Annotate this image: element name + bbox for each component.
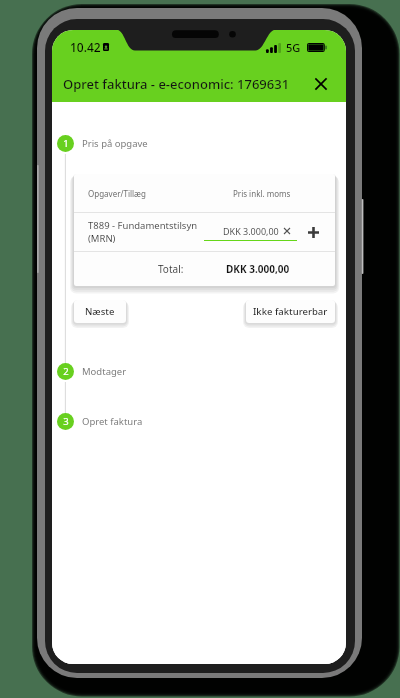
staticText: Pris inkl. moms: [233, 188, 291, 199]
button[interactable]: 3: [52, 413, 346, 430]
button[interactable]: Ikke fakturerbar: [246, 300, 335, 323]
staticText: T889 - Fundamentstilsyn (MRN): [88, 219, 198, 245]
staticText: Total:: [158, 262, 184, 276]
button[interactable]: 1: [52, 135, 346, 152]
button[interactable]: Luk: [309, 72, 333, 96]
staticText: 5G: [286, 40, 301, 55]
staticText: 2: [63, 365, 69, 378]
button[interactable]: Tilføj: [302, 221, 324, 243]
staticText: 1: [63, 137, 69, 150]
staticText: Pris på opgave: [82, 137, 148, 150]
staticText: DKK 3.000,00: [223, 225, 279, 237]
staticText: Opret faktura: [82, 415, 143, 428]
staticText: DKK 3.000,00: [226, 262, 290, 276]
staticText: Ikke fakturerbar: [253, 305, 328, 318]
button[interactable]: 2: [52, 363, 346, 380]
staticText: Opret faktura - e-economic: 1769631: [63, 75, 290, 93]
staticText: 3: [63, 415, 69, 428]
button[interactable]: Næste: [74, 300, 126, 323]
staticText: 10.42: [70, 39, 101, 55]
staticText: Modtager: [82, 365, 127, 378]
staticText: Opgaver/Tillæg: [88, 188, 146, 199]
staticText: Næste: [85, 305, 115, 318]
